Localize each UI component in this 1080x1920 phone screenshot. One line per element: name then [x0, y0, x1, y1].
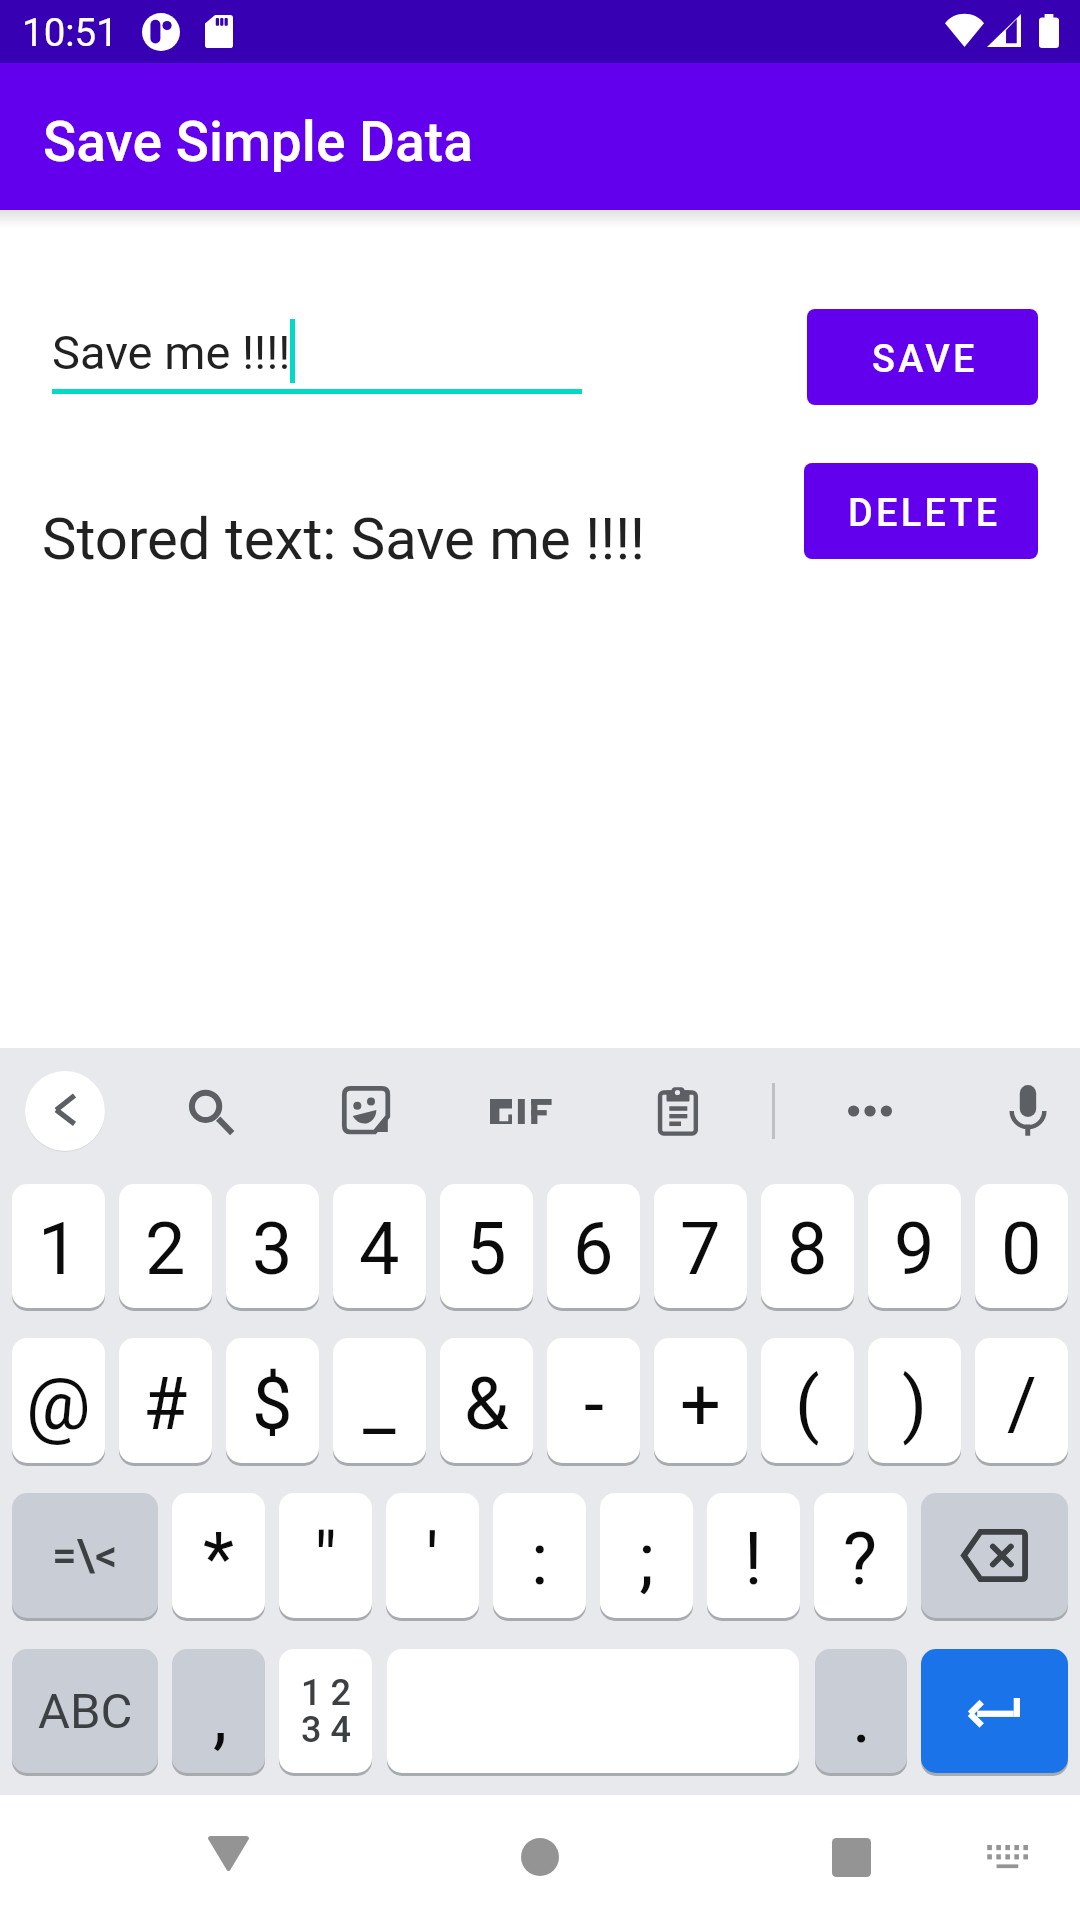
button[interactable]: #: [119, 1338, 212, 1463]
button[interactable]: :: [493, 1493, 586, 1618]
staticText: $: [252, 1362, 293, 1446]
staticText: 8: [787, 1207, 828, 1291]
staticText: 4: [359, 1207, 400, 1291]
button[interactable]: Switch keyboard: [967, 1817, 1047, 1897]
staticText: 9: [894, 1207, 935, 1291]
button[interactable]: GIF: [470, 1081, 570, 1141]
staticText: *: [203, 1517, 235, 1601]
staticText: 6: [573, 1207, 614, 1291]
button[interactable]: ): [868, 1338, 961, 1463]
button[interactable]: 8: [761, 1184, 854, 1308]
button[interactable]: Close keyboard: [25, 1071, 105, 1151]
staticText: ABC: [38, 1683, 133, 1740]
staticText: Save me !!!!: [52, 325, 291, 380]
staticText: /: [1007, 1362, 1037, 1446]
button[interactable]: ': [386, 1493, 479, 1618]
staticText: ": [314, 1517, 338, 1601]
staticText: DELETE: [848, 491, 1001, 536]
staticText: !: [744, 1517, 763, 1601]
button[interactable]: Back: [178, 1804, 278, 1904]
button[interactable]: 3: [226, 1184, 319, 1308]
staticText: 3 4: [301, 1709, 351, 1751]
button[interactable]: Stickers: [336, 1081, 396, 1141]
staticText: +: [680, 1362, 721, 1446]
button[interactable]: Clipboard: [648, 1081, 708, 1141]
staticText: #: [143, 1362, 188, 1446]
button[interactable]: .: [815, 1649, 907, 1773]
staticText: 0: [1001, 1207, 1042, 1291]
button[interactable]: +: [654, 1338, 747, 1463]
button[interactable]: !: [707, 1493, 800, 1618]
button[interactable]: /: [975, 1338, 1068, 1463]
button[interactable]: Home: [490, 1807, 590, 1907]
staticText: 3: [252, 1207, 293, 1291]
button[interactable]: ;: [600, 1493, 693, 1618]
button[interactable]: ": [279, 1493, 372, 1618]
staticText: ,: [213, 1674, 228, 1758]
staticText: ?: [843, 1517, 878, 1601]
staticText: ': [426, 1517, 439, 1601]
staticText: -: [584, 1362, 604, 1446]
button[interactable]: 5: [440, 1184, 533, 1308]
button[interactable]: 0: [975, 1184, 1068, 1308]
staticText: (: [795, 1362, 820, 1446]
button[interactable]: $: [226, 1338, 319, 1463]
button[interactable]: Recent apps: [801, 1807, 901, 1907]
staticText: 2: [145, 1207, 186, 1291]
staticText: _: [363, 1362, 396, 1446]
button[interactable]: Backspace: [921, 1493, 1068, 1618]
button[interactable]: More options: [840, 1081, 900, 1141]
staticText: ;: [639, 1517, 655, 1601]
staticText: .: [852, 1675, 871, 1759]
button[interactable]: SAVE: [807, 309, 1038, 405]
staticText: 5: [466, 1207, 507, 1291]
staticText: 1: [38, 1207, 79, 1291]
button[interactable]: -: [547, 1338, 640, 1463]
button[interactable]: 2: [119, 1184, 212, 1308]
button[interactable]: &: [440, 1338, 533, 1463]
button[interactable]: DELETE: [804, 463, 1038, 559]
staticText: Save Simple Data: [43, 110, 473, 174]
staticText: &: [464, 1362, 509, 1446]
button[interactable]: Voice input: [998, 1081, 1058, 1141]
button[interactable]: ,: [172, 1649, 265, 1773]
staticText: 1 2: [301, 1672, 351, 1714]
button[interactable]: _: [333, 1338, 426, 1463]
button[interactable]: 9: [868, 1184, 961, 1308]
staticText: =\<: [52, 1530, 118, 1582]
button[interactable]: 7: [654, 1184, 747, 1308]
button[interactable]: Enter: [921, 1649, 1068, 1773]
button[interactable]: *: [172, 1493, 265, 1618]
staticText: ): [902, 1362, 928, 1446]
staticText: :: [531, 1517, 549, 1601]
button[interactable]: 1: [12, 1184, 105, 1308]
staticText: SAVE: [872, 337, 978, 382]
button[interactable]: 4: [333, 1184, 426, 1308]
button[interactable]: Search: [181, 1081, 241, 1141]
button[interactable]: 6: [547, 1184, 640, 1308]
staticText: Stored text: Save me !!!!: [42, 505, 646, 573]
button[interactable]: ABC: [12, 1649, 158, 1773]
button[interactable]: ?: [814, 1493, 907, 1618]
button[interactable]: 1 2: [279, 1649, 372, 1773]
staticText: @: [26, 1362, 91, 1446]
staticText: 10:51: [22, 10, 118, 55]
button[interactable]: =\<: [12, 1493, 158, 1618]
staticText: 7: [680, 1207, 721, 1291]
button[interactable]: (: [761, 1338, 854, 1463]
button[interactable]: @: [12, 1338, 105, 1463]
